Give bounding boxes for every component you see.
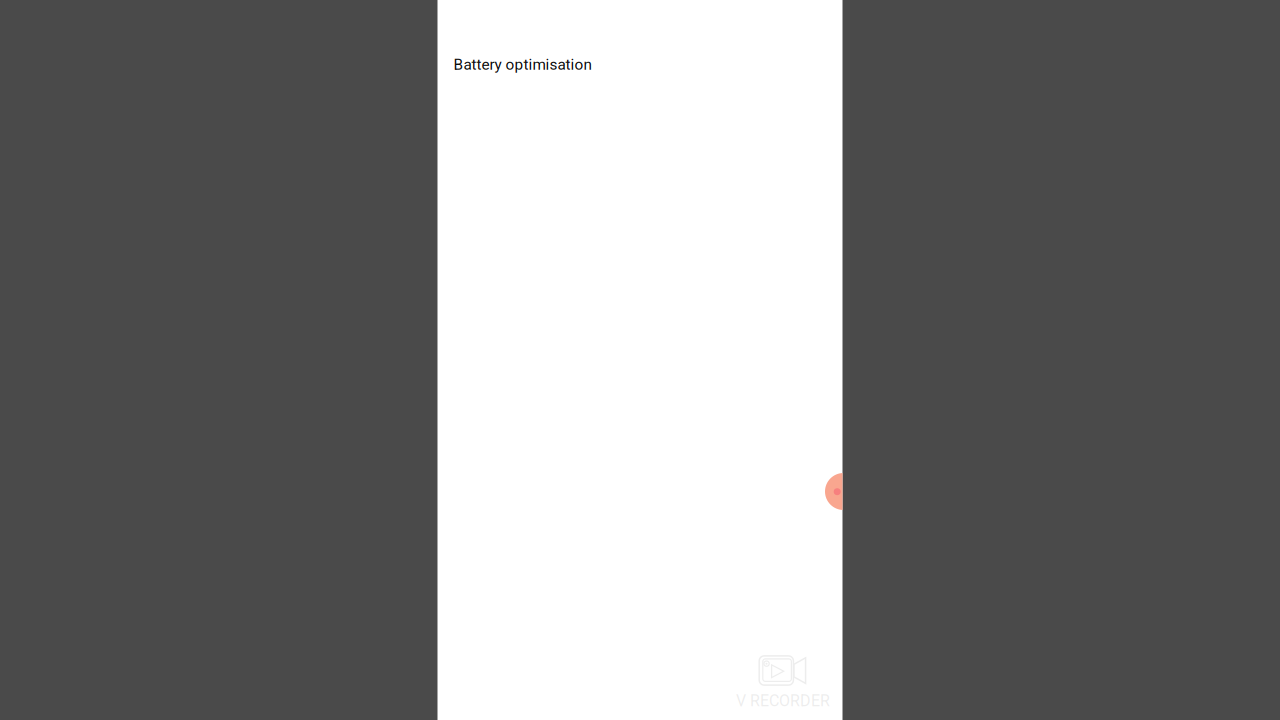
staticText: V RECORDER xyxy=(736,691,830,710)
button[interactable]: Record xyxy=(825,473,862,510)
staticText: Battery optimisation xyxy=(453,55,591,73)
